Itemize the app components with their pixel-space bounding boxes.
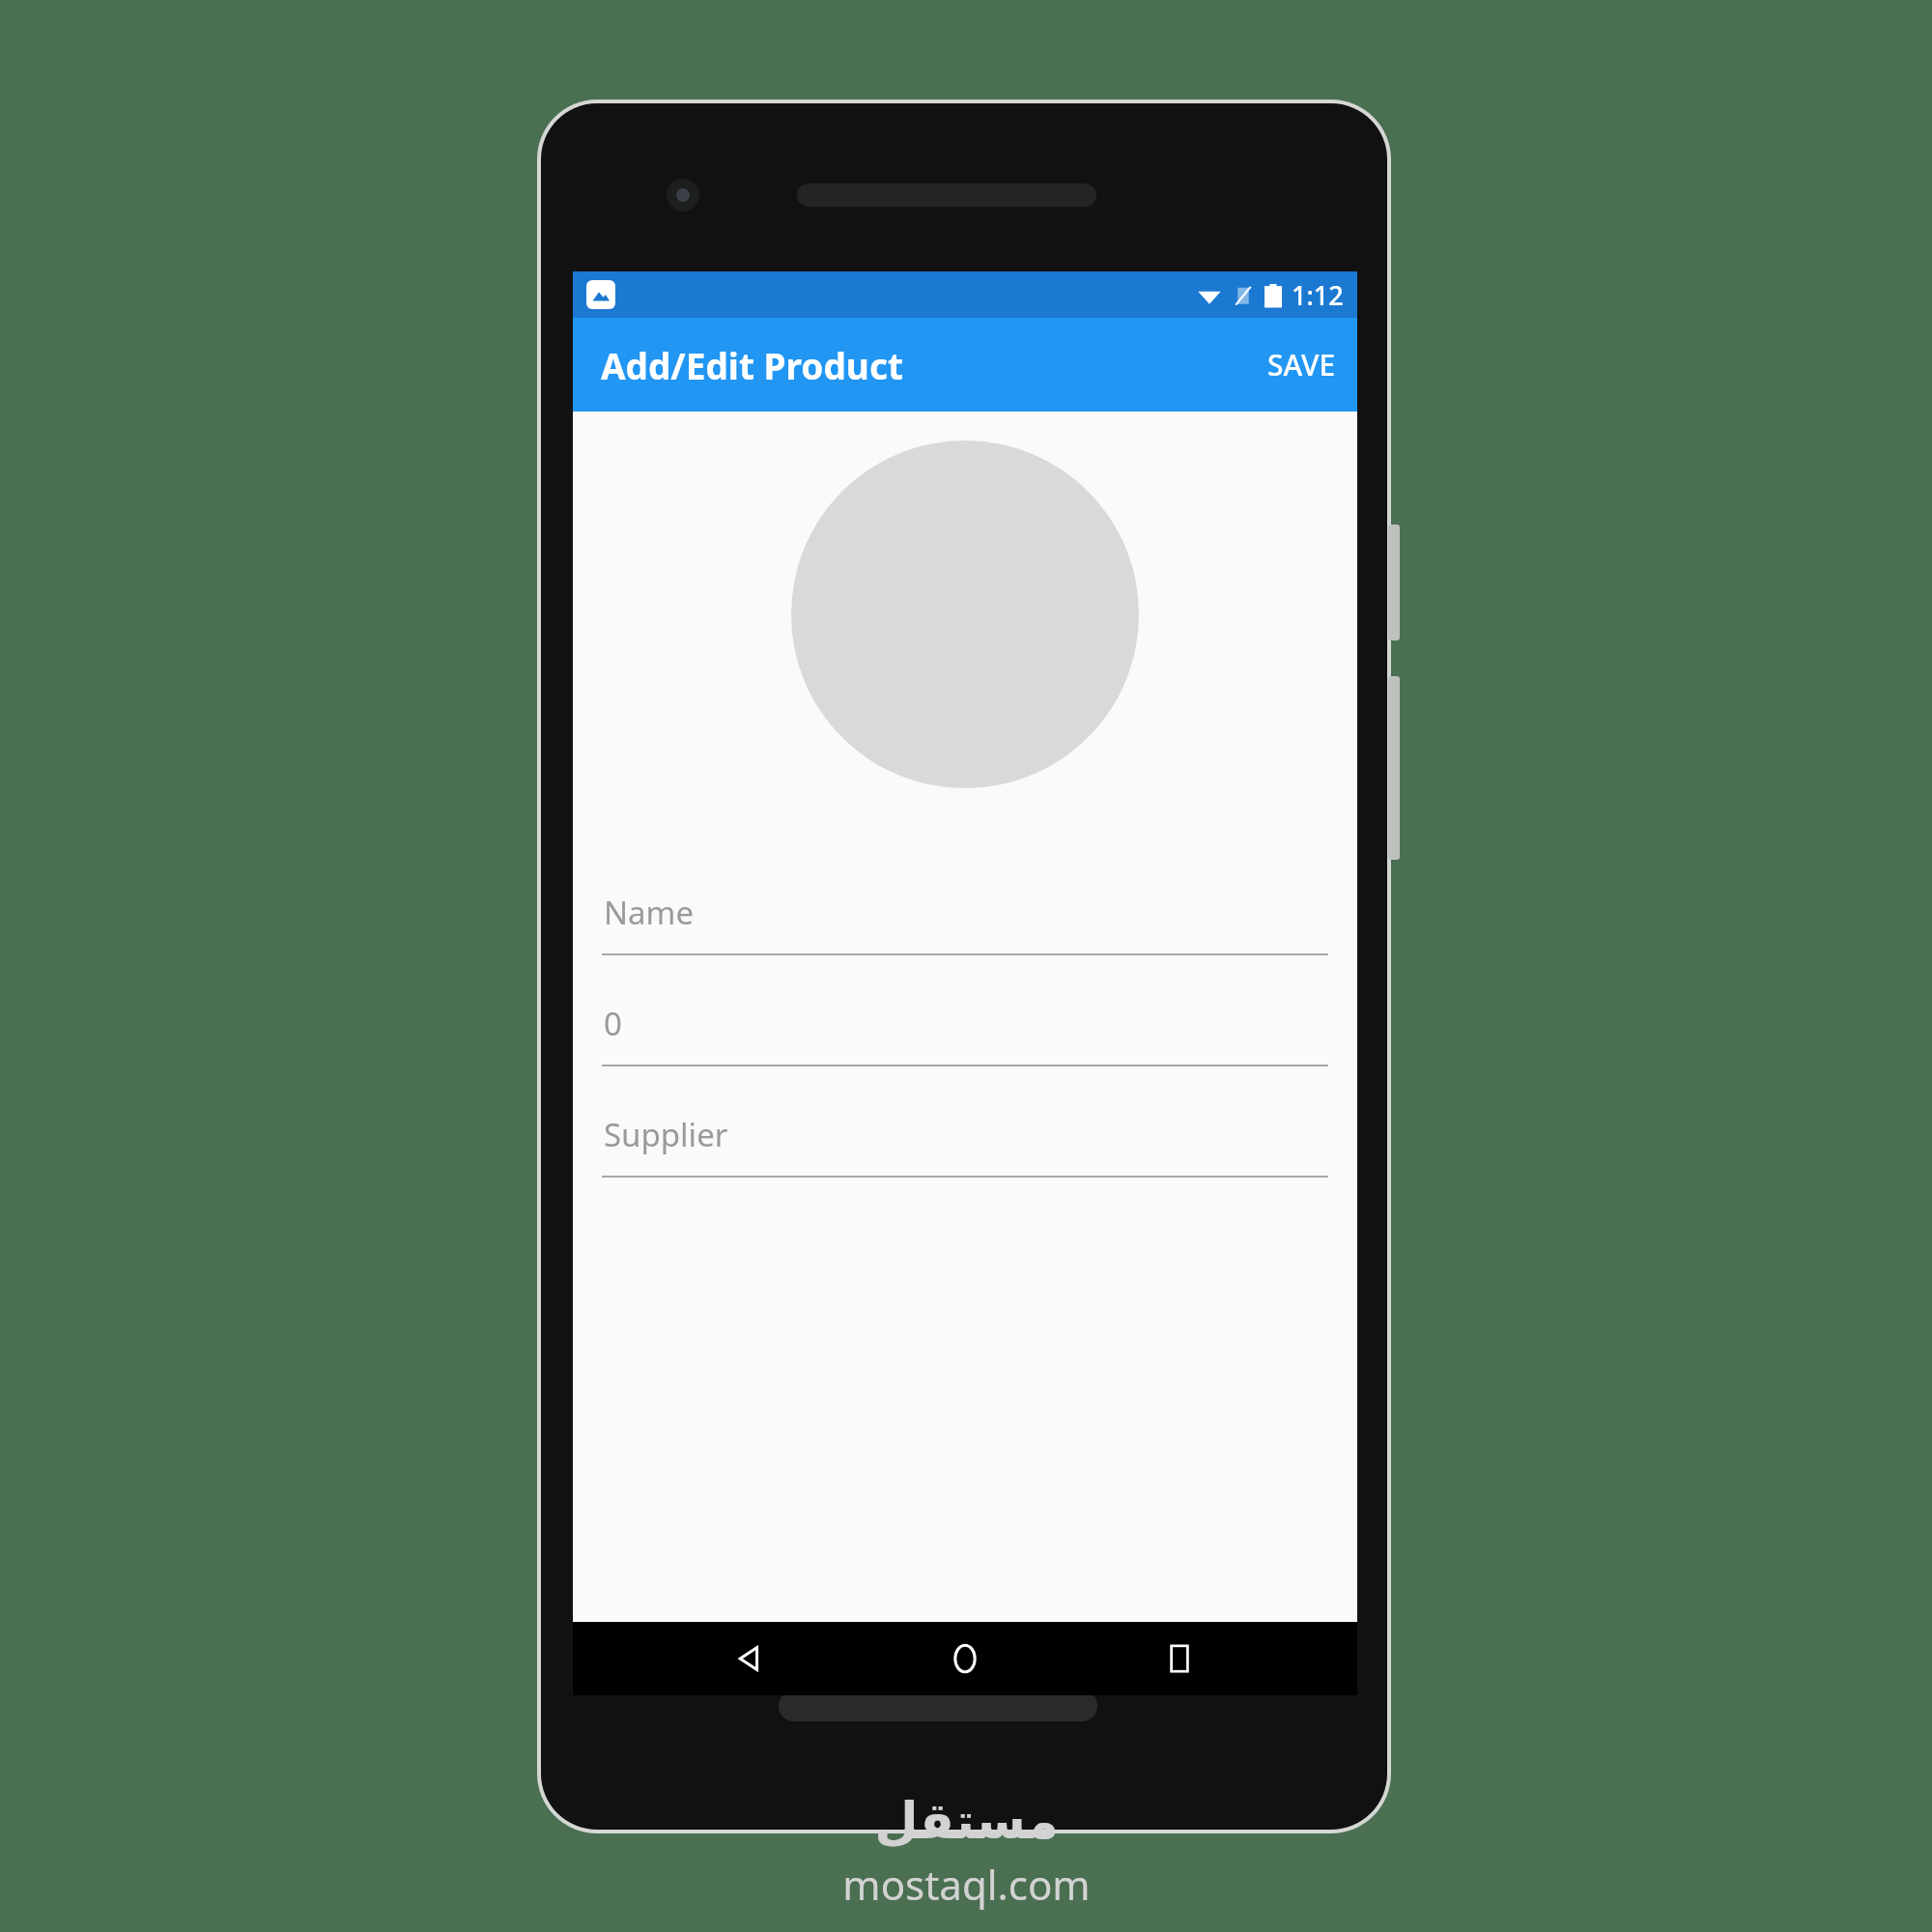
staticText: Supplier bbox=[604, 1113, 728, 1156]
button[interactable]: Back bbox=[714, 1622, 787, 1695]
button[interactable]: Product image bbox=[791, 440, 1139, 788]
button[interactable]: Home bbox=[928, 1622, 1002, 1695]
button[interactable]: 0 bbox=[573, 955, 1357, 1066]
staticText: 0 bbox=[604, 1002, 622, 1045]
button[interactable]: Supplier bbox=[573, 1066, 1357, 1178]
button[interactable]: SAVE bbox=[1246, 318, 1357, 412]
staticText: SAVE bbox=[1267, 345, 1336, 384]
staticText: 1:12 bbox=[1292, 277, 1344, 313]
button[interactable]: Recent apps bbox=[1143, 1622, 1216, 1695]
button[interactable]: Name bbox=[573, 844, 1357, 955]
staticText: Name bbox=[604, 891, 695, 934]
staticText: mostaql.com bbox=[842, 1857, 1091, 1912]
staticText: مستقل bbox=[874, 1792, 1059, 1851]
staticText: Add/Edit Product bbox=[601, 341, 904, 389]
